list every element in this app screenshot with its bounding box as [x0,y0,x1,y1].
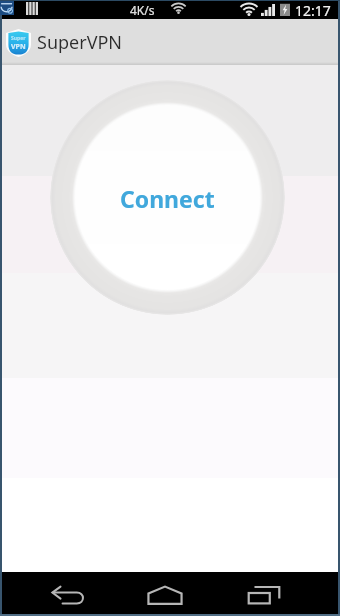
button[interactable]: Home [147,572,209,616]
button[interactable]: Connect [2,65,338,572]
staticText: SuperVPN [37,30,123,55]
button[interactable]: Back [51,572,111,616]
button[interactable]: Recent apps [247,572,307,616]
staticText: 4K/s [130,2,155,18]
staticText: Super [11,35,26,42]
staticText: VPN [11,42,26,52]
staticText: 12:17 [295,1,331,20]
staticText: Connect [120,183,215,214]
